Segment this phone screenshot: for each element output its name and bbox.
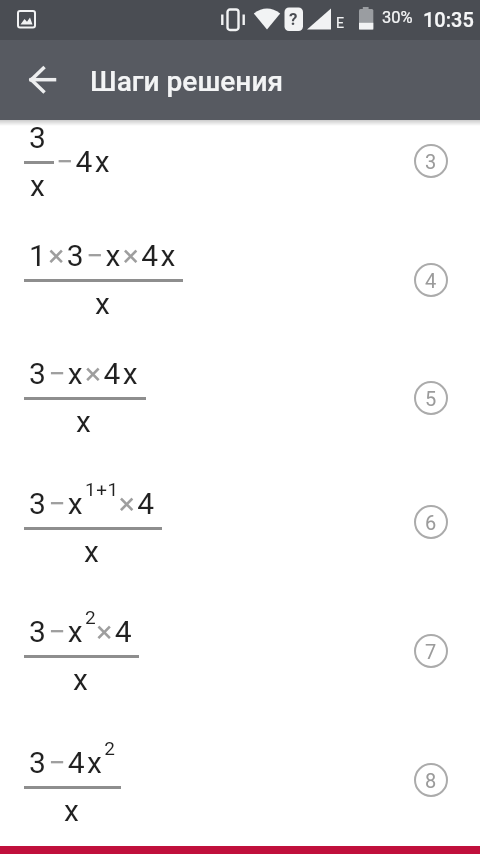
staticText: 1×3−x×4x <box>29 238 178 273</box>
button[interactable]: 3 <box>0 120 480 220</box>
staticText: 4 <box>425 269 437 292</box>
staticText: 3−x1+1×4 <box>29 478 157 521</box>
staticText: Шаги решения <box>90 65 284 98</box>
staticText: 30% <box>382 8 413 27</box>
staticText: x <box>95 286 113 321</box>
staticText: 3−x×4x <box>29 356 141 391</box>
staticText: 3−x2×4 <box>29 606 134 649</box>
staticText: E <box>336 15 344 31</box>
staticText: ? <box>289 9 298 29</box>
staticText: 10:35 <box>423 8 474 31</box>
button[interactable]: 3−x1+1×4 <box>0 457 480 589</box>
button[interactable]: 3−4x2 <box>0 716 480 846</box>
staticText: x <box>30 168 48 203</box>
staticText: 3 <box>29 120 49 155</box>
staticText: 6 <box>425 511 437 534</box>
button[interactable] <box>20 97 68 145</box>
staticText: 3 <box>425 150 437 173</box>
staticText: −4x <box>56 144 113 179</box>
staticText: x <box>73 662 91 697</box>
staticText: x <box>64 793 82 828</box>
button[interactable]: 3−x2×4 <box>0 589 480 716</box>
staticText: x <box>76 404 94 439</box>
staticText: 8 <box>425 769 437 792</box>
staticText: 5 <box>425 387 437 410</box>
staticText: 7 <box>425 640 437 663</box>
button[interactable]: 1×3−x×4x <box>0 220 480 340</box>
staticText: x <box>84 534 102 569</box>
staticText: 3−4x2 <box>29 737 116 780</box>
button[interactable]: 3−x×4x <box>0 340 480 457</box>
